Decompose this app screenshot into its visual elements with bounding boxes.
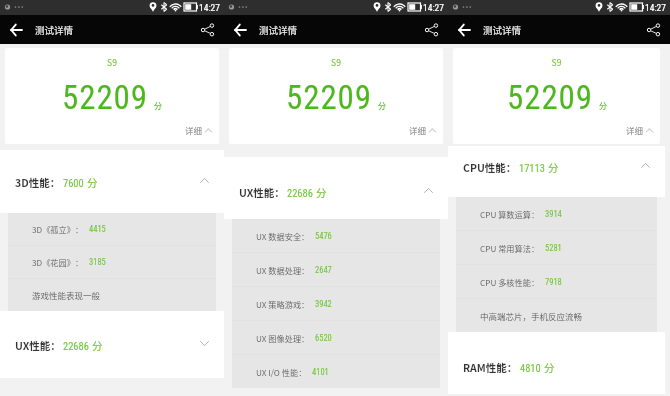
button[interactable]: Share bbox=[636, 15, 670, 44]
button[interactable]: UX 图像处理： bbox=[232, 321, 440, 354]
staticText: UX 图像处理： bbox=[256, 332, 310, 344]
staticText: S9 bbox=[229, 56, 443, 68]
staticText: 4101 bbox=[312, 367, 329, 377]
staticText: S9 bbox=[5, 56, 219, 68]
staticText: 分 bbox=[544, 360, 555, 375]
staticText: UX 数据处理： bbox=[256, 264, 310, 276]
button[interactable]: UX 策略游戏： bbox=[232, 287, 440, 320]
button[interactable]: UX 数据安全： bbox=[232, 219, 440, 252]
button[interactable]: RAM性能： bbox=[448, 332, 665, 394]
staticText: UX性能： bbox=[239, 185, 285, 200]
staticText: 3D性能： bbox=[15, 175, 61, 190]
button[interactable]: Share bbox=[190, 15, 224, 44]
staticText: 3D《孤立》： bbox=[32, 223, 84, 235]
button[interactable]: CPU性能： bbox=[448, 146, 665, 197]
button[interactable]: S9 bbox=[5, 48, 219, 144]
staticText: 3185 bbox=[89, 257, 106, 267]
staticText: 52209 bbox=[286, 78, 372, 117]
staticText: UX 数据安全： bbox=[256, 230, 310, 242]
staticText: 4810 bbox=[520, 362, 541, 374]
button[interactable]: 3D性能： bbox=[0, 150, 224, 213]
button[interactable]: Back bbox=[224, 15, 256, 44]
staticText: CPU 常用算法： bbox=[480, 242, 540, 254]
staticText: 14:27 bbox=[199, 2, 220, 13]
staticText: 5476 bbox=[315, 231, 332, 241]
staticText: UX I/O 性能： bbox=[256, 366, 307, 378]
button[interactable]: 3D《孤立》： bbox=[8, 213, 216, 245]
staticText: 分 bbox=[92, 338, 103, 353]
button[interactable]: UX 数据处理： bbox=[232, 253, 440, 286]
button[interactable]: UX性能： bbox=[0, 311, 224, 378]
staticText: CPU 算数运算： bbox=[480, 208, 540, 220]
staticText: 测试详情 bbox=[35, 23, 74, 37]
staticText: 17113 bbox=[519, 162, 545, 174]
button[interactable]: Share bbox=[414, 15, 448, 44]
staticText: 测试详情 bbox=[259, 23, 298, 37]
button[interactable]: CPU 常用算法： bbox=[456, 231, 657, 264]
staticText: 分 bbox=[154, 100, 162, 112]
staticText: 14:27 bbox=[423, 2, 444, 13]
staticText: 3D《花园》： bbox=[32, 256, 84, 268]
staticText: 详细 bbox=[626, 124, 644, 136]
staticText: 分 bbox=[599, 100, 607, 112]
staticText: CPU性能： bbox=[463, 160, 517, 175]
button[interactable]: 3D《花园》： bbox=[8, 246, 216, 278]
staticText: 分 bbox=[378, 100, 386, 112]
staticText: 分 bbox=[87, 175, 98, 190]
staticText: 4415 bbox=[89, 224, 106, 234]
staticText: 分 bbox=[316, 185, 327, 200]
staticText: RAM性能： bbox=[463, 360, 518, 375]
button[interactable]: S9 bbox=[229, 48, 443, 144]
button[interactable]: Back bbox=[448, 15, 480, 44]
staticText: 3942 bbox=[315, 299, 332, 309]
staticText: 7600 bbox=[63, 177, 84, 189]
button[interactable]: UX性能： bbox=[224, 157, 448, 219]
button[interactable]: UX I/O 性能： bbox=[232, 355, 440, 388]
staticText: UX 策略游戏： bbox=[256, 298, 310, 310]
staticText: 7918 bbox=[545, 277, 562, 287]
staticText: 中高端芯片，手机反应流畅 bbox=[480, 310, 583, 322]
staticText: CPU 多核性能： bbox=[480, 276, 540, 288]
staticText: 14:27 bbox=[645, 2, 666, 13]
button[interactable]: Back bbox=[0, 15, 32, 44]
button[interactable]: S9 bbox=[453, 48, 660, 144]
staticText: 2647 bbox=[315, 265, 332, 275]
staticText: 测试详情 bbox=[483, 23, 522, 37]
staticText: 分 bbox=[548, 160, 559, 175]
staticText: 52209 bbox=[507, 78, 593, 117]
button[interactable]: CPU 算数运算： bbox=[456, 197, 657, 230]
staticText: 6520 bbox=[315, 333, 332, 343]
staticText: UX性能： bbox=[15, 338, 61, 353]
staticText: 22686 bbox=[287, 187, 313, 199]
staticText: 详细 bbox=[409, 124, 427, 136]
staticText: 22686 bbox=[63, 340, 89, 352]
staticText: 5281 bbox=[545, 243, 562, 253]
staticText: 52209 bbox=[62, 78, 148, 117]
staticText: 详细 bbox=[185, 124, 203, 136]
button[interactable]: CPU 多核性能： bbox=[456, 265, 657, 298]
staticText: 游戏性能表现一般 bbox=[32, 289, 101, 301]
staticText: S9 bbox=[453, 56, 660, 68]
staticText: 3914 bbox=[545, 209, 562, 219]
